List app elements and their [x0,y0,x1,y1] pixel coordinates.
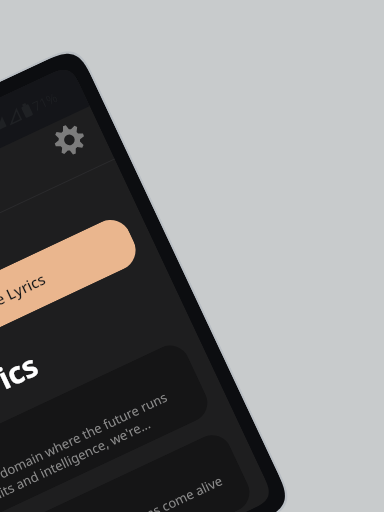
button[interactable]: In a digital domain where the future run… [0,339,214,512]
button[interactable]: Settings [43,114,95,166]
staticText: Your Lyrics [0,344,45,451]
button[interactable]: In a world of tech where dreams come ali… [0,428,256,512]
staticText: Generate Lyrics [0,268,49,334]
staticText: In a digital domain where the future run… [0,388,178,512]
button[interactable]: Generate Lyrics [0,213,142,389]
staticText: In a world of tech where dreams come ali… [0,471,232,512]
